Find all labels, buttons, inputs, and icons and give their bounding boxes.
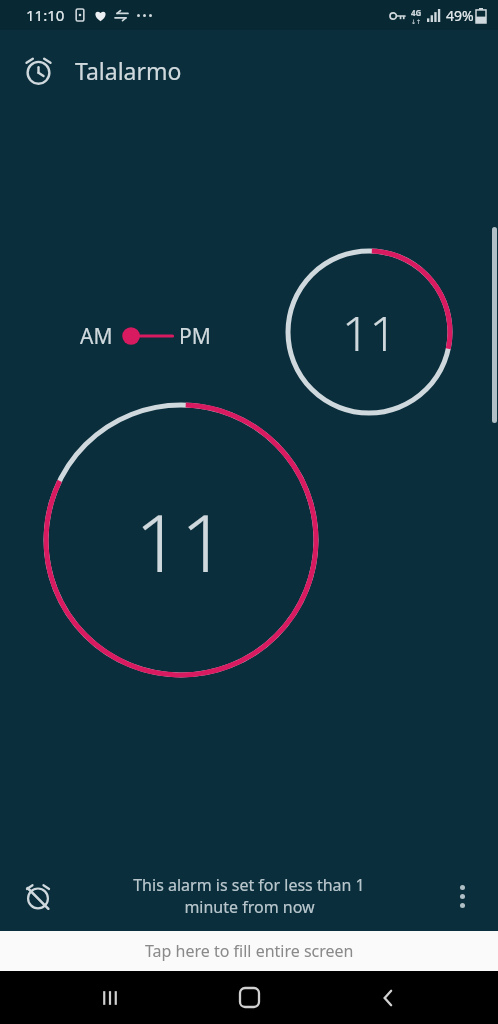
- button[interactable]: AM: [80, 316, 211, 356]
- staticText: 49%: [446, 6, 474, 25]
- staticText: AM: [80, 322, 113, 351]
- button[interactable]: Back: [359, 971, 419, 1024]
- staticText: PM: [179, 322, 211, 351]
- staticText: Talalarmo: [75, 55, 182, 86]
- staticText: minute from now: [184, 896, 315, 918]
- button[interactable]: 11: [46, 405, 316, 675]
- button[interactable]: 11: [288, 251, 450, 413]
- staticText: 11: [342, 300, 397, 365]
- staticText: This alarm is set for less than 1: [133, 874, 365, 896]
- staticText: 11: [135, 486, 227, 595]
- button[interactable]: This alarm is set for less than 1: [99, 874, 399, 918]
- staticText: ↓↑: [411, 18, 422, 25]
- staticText: 4G: [411, 7, 422, 18]
- staticText: 11:10: [26, 5, 65, 25]
- button[interactable]: Alarm off: [14, 872, 62, 920]
- button[interactable]: Recent apps: [80, 971, 140, 1024]
- button[interactable]: Home: [219, 971, 279, 1024]
- button[interactable]: More options: [440, 874, 484, 918]
- button[interactable]: Tap here to fill entire screen: [0, 931, 498, 971]
- staticText: Tap here to fill entire screen: [145, 940, 354, 962]
